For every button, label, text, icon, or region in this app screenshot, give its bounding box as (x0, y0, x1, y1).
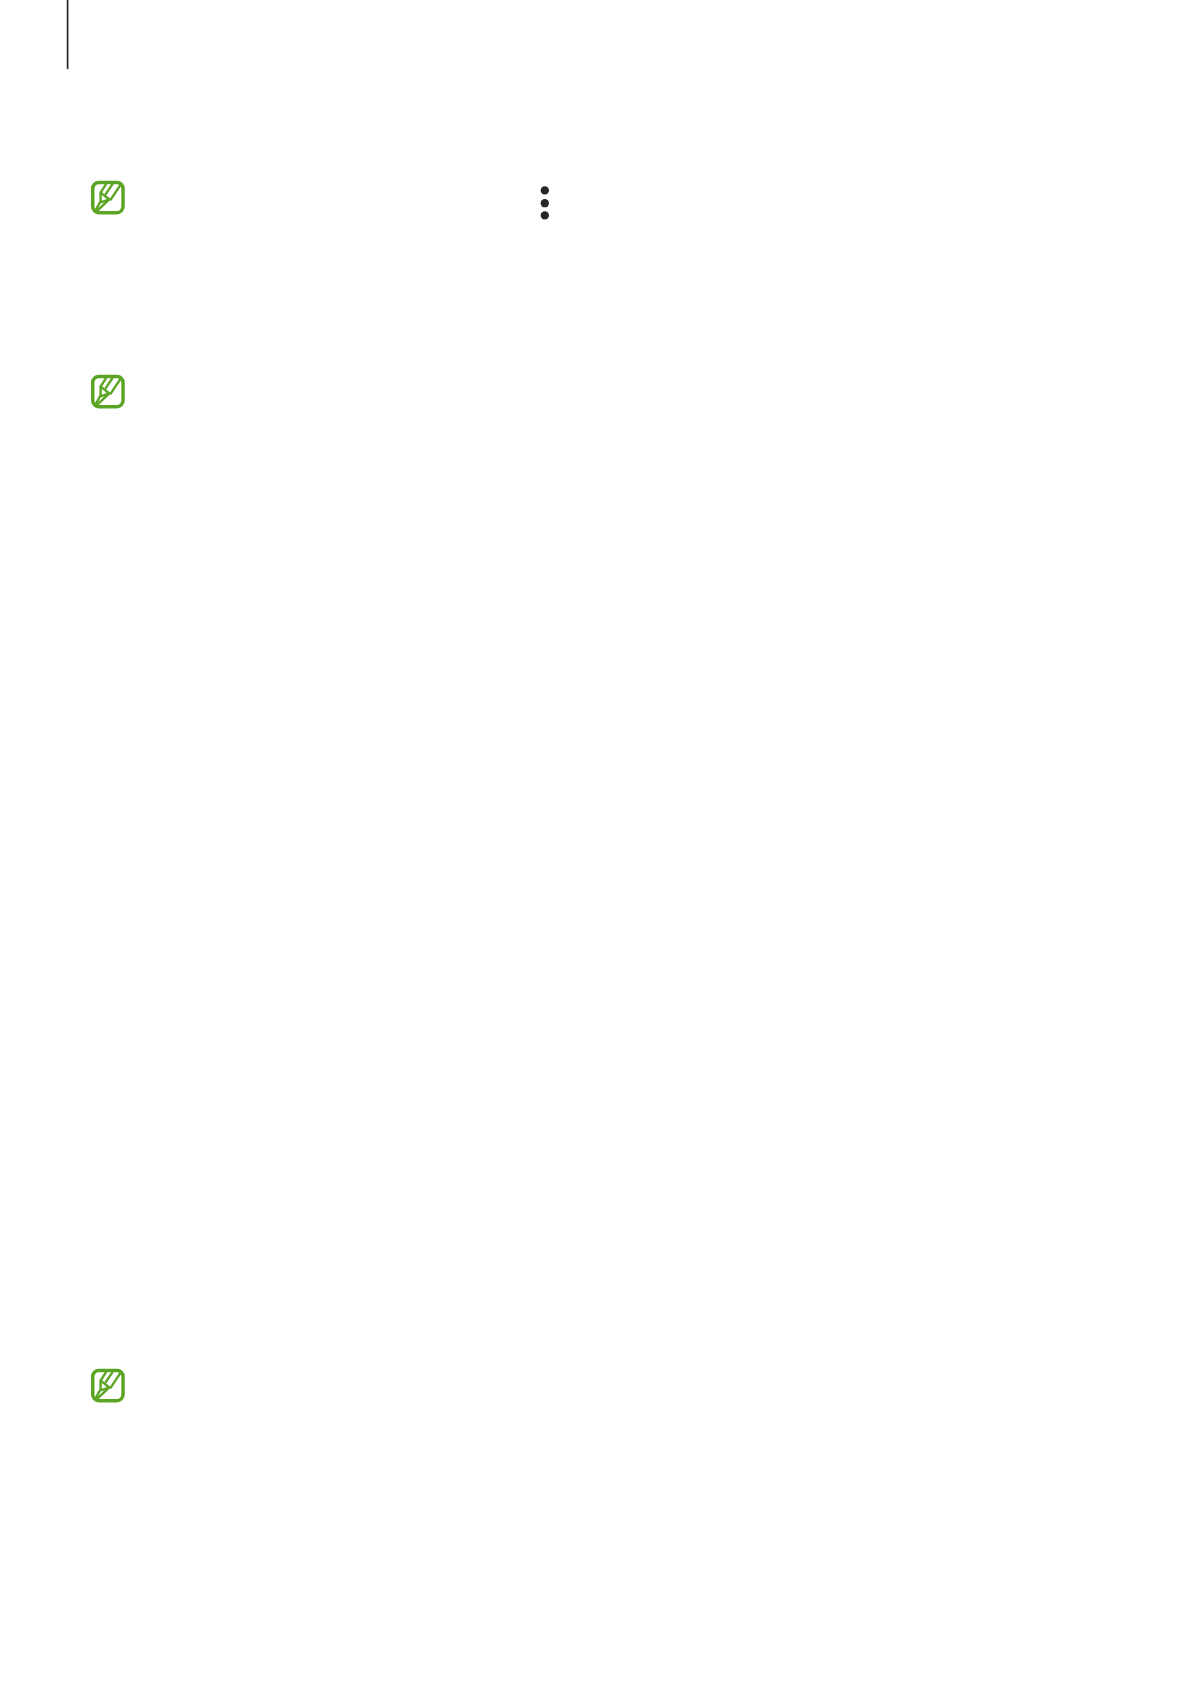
button[interactable]: More options (534, 184, 556, 220)
button[interactable]: Samsung Notes (88, 1366, 127, 1405)
button[interactable]: Samsung Notes (88, 372, 127, 411)
button[interactable]: Samsung Notes (88, 178, 127, 217)
